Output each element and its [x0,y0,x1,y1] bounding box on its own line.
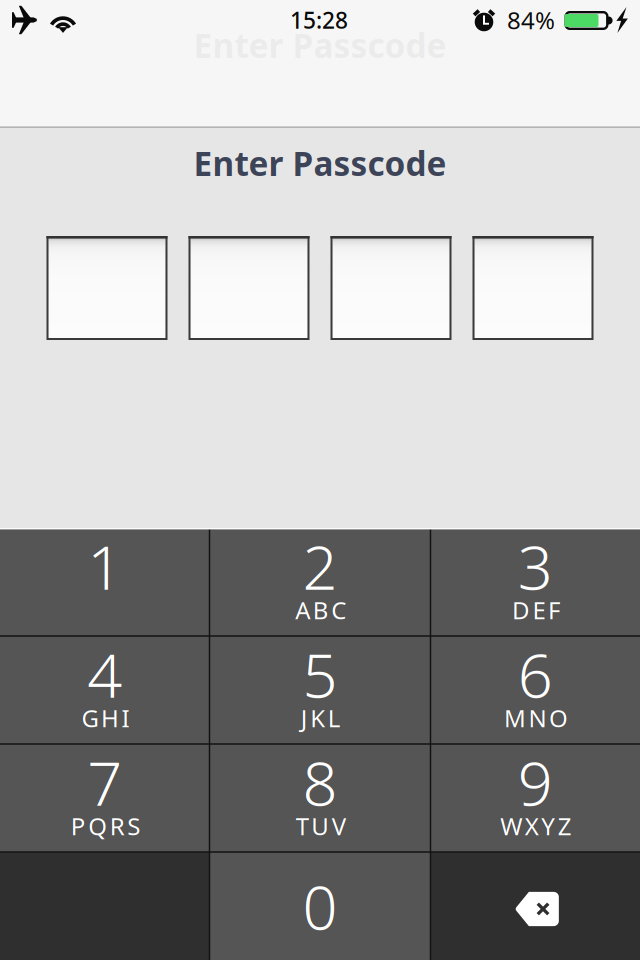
staticText: 1 [87,525,122,607]
button[interactable]: 6 [430,636,640,744]
button[interactable]: Delete [430,852,640,960]
staticText: Enter Passcode [193,141,446,185]
staticText: GHI [81,702,129,734]
staticText: 0 [302,865,337,947]
button[interactable]: 0 [209,852,430,960]
button[interactable]: 8 [209,744,430,852]
button[interactable]: 1 [0,528,209,636]
button[interactable]: 3 [430,528,640,636]
staticText: JKL [301,702,341,734]
staticText: 3 [518,525,553,607]
button[interactable]: 2 [209,528,430,636]
staticText: MNO [504,702,568,734]
staticText: 15:28 [290,5,348,35]
staticText: TUV [296,810,346,842]
staticText: ABC [295,594,346,626]
button[interactable]: 4 [0,636,209,744]
staticText: 6 [518,633,553,715]
staticText: 8 [302,741,337,823]
staticText: 84% [507,4,555,36]
button[interactable]: 7 [0,744,209,852]
staticText: PQRS [71,810,140,842]
staticText: 4 [87,633,122,715]
staticText: 9 [518,741,553,823]
staticText: WXYZ [500,810,572,842]
button[interactable]: 5 [209,636,430,744]
staticText: 2 [302,525,337,607]
button[interactable]: 9 [430,744,640,852]
staticText: 5 [302,633,337,715]
staticText: DEF [512,594,560,626]
staticText: 7 [87,741,122,823]
staticText: Enter Passcode [193,23,446,67]
